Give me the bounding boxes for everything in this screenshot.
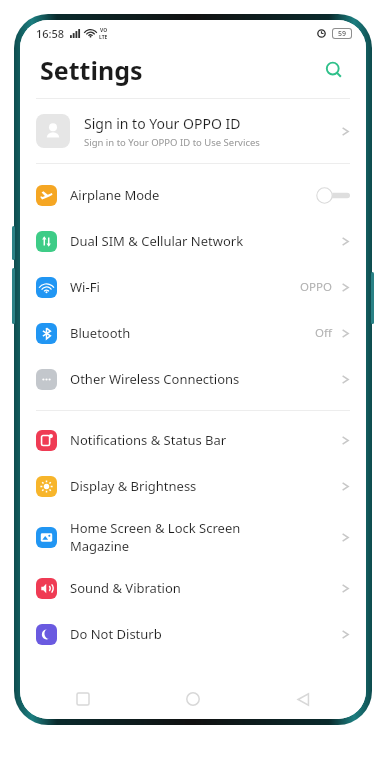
button[interactable]: Display & Brightness xyxy=(20,463,366,509)
button[interactable]: Search xyxy=(316,52,352,88)
staticText: 59 xyxy=(338,29,347,38)
staticText: Magazine xyxy=(70,537,130,555)
button[interactable]: Airplane Mode toggle xyxy=(316,187,350,204)
staticText: Bluetooth xyxy=(70,324,131,342)
button[interactable]: Back xyxy=(286,682,320,716)
button[interactable]: Wi-Fi xyxy=(20,264,366,310)
button[interactable]: Other Wireless Connections xyxy=(20,356,366,402)
staticText: Settings xyxy=(40,53,143,87)
staticText: OPPO xyxy=(300,279,332,295)
button[interactable]: Home Screen & Lock Screen xyxy=(20,509,366,565)
staticText: Sound & Vibration xyxy=(70,579,181,597)
staticText: LTE xyxy=(99,34,108,41)
button[interactable]: Notifications & Status Bar xyxy=(20,417,366,463)
staticText: Airplane Mode xyxy=(70,186,160,204)
button[interactable]: Recents xyxy=(66,682,100,716)
staticText: Sign in to Your OPPO ID to Use Services xyxy=(84,136,260,149)
staticText: Display & Brightness xyxy=(70,477,197,495)
button[interactable]: Do Not Disturb xyxy=(20,611,366,657)
staticText: Off xyxy=(315,325,332,341)
staticText: 16:58 xyxy=(36,26,65,41)
button[interactable]: Sound & Vibration xyxy=(20,565,366,611)
staticText: Dual SIM & Cellular Network xyxy=(70,232,244,250)
staticText: Notifications & Status Bar xyxy=(70,431,227,449)
staticText: Wi-Fi xyxy=(70,278,100,296)
staticText: Do Not Disturb xyxy=(70,625,162,643)
staticText: Other Wireless Connections xyxy=(70,370,240,388)
button[interactable]: Bluetooth xyxy=(20,310,366,356)
staticText: VO xyxy=(100,27,108,34)
button[interactable]: Airplane Mode xyxy=(20,172,366,218)
staticText: Sign in to Your OPPO ID xyxy=(84,114,241,133)
button[interactable]: Dual SIM & Cellular Network xyxy=(20,218,366,264)
button[interactable]: Home xyxy=(176,682,210,716)
staticText: Home Screen & Lock Screen xyxy=(70,519,241,537)
button[interactable]: Sign in to Your OPPO ID xyxy=(20,99,366,163)
